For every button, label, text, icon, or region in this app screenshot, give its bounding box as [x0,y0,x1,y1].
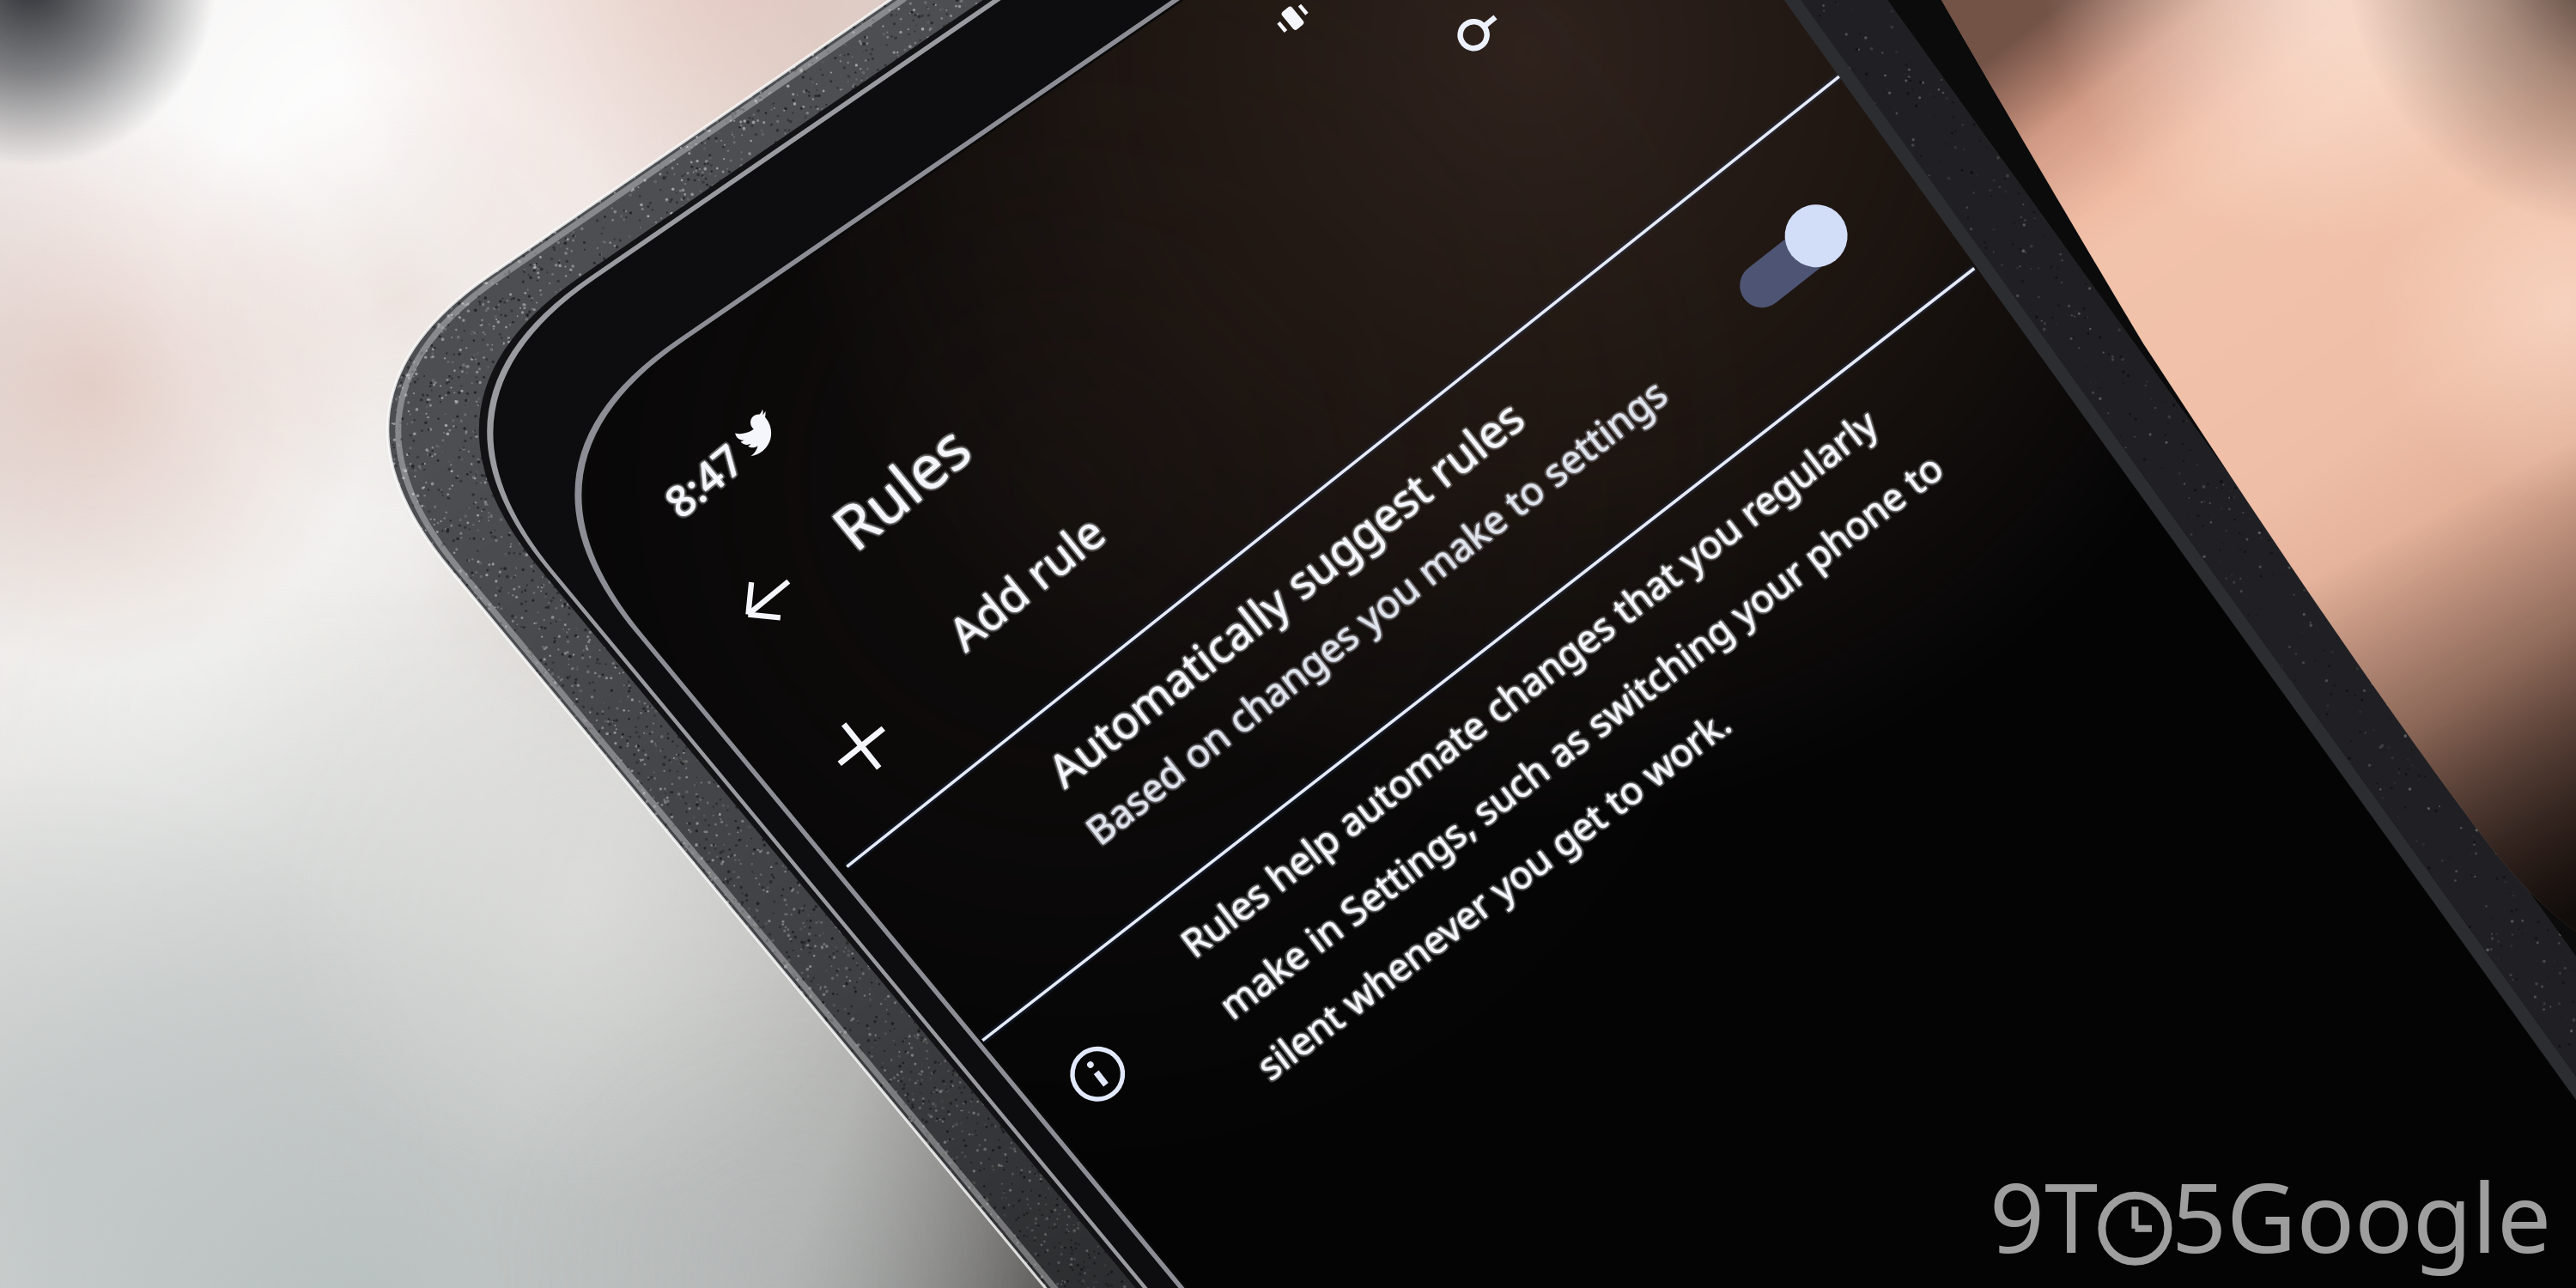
button[interactable]: Rules settings screen [0,0,2576,1288]
